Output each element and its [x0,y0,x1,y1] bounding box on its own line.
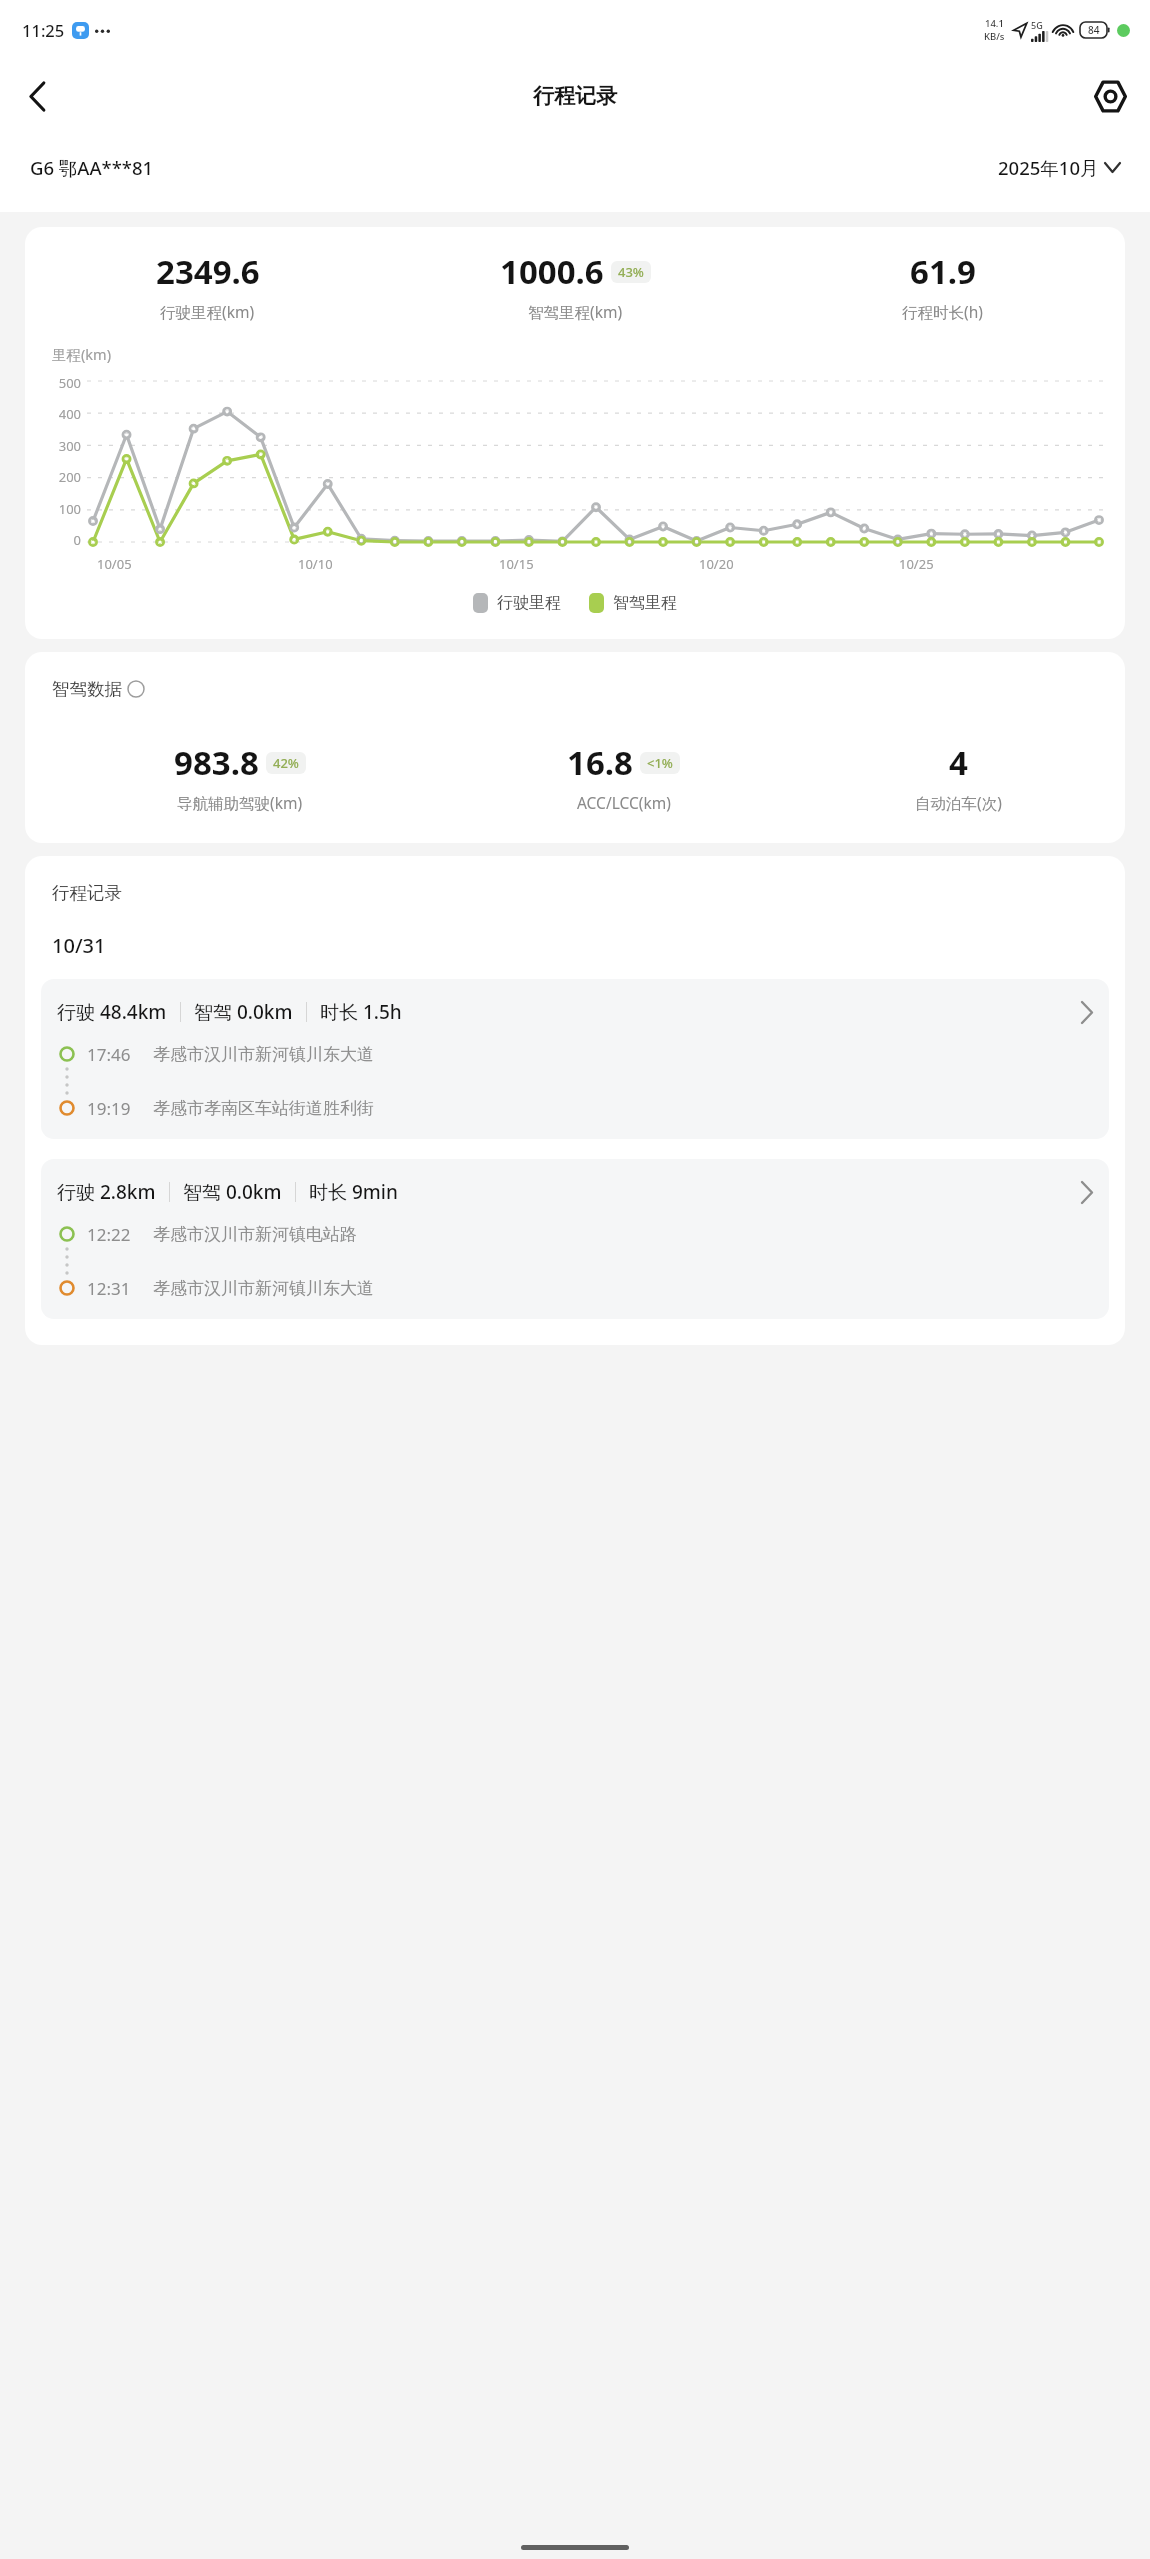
staticText: 200 [58,468,81,486]
staticText: 10/05 [97,555,132,573]
button[interactable]: Back [9,68,65,124]
staticText: KB/s [984,30,1005,43]
staticText: 10/10 [298,555,333,573]
staticText: 智驾里程 [613,593,677,613]
staticText: 12:22 [87,1223,131,1246]
staticText: 500 [58,374,81,392]
staticText: 4 [949,740,968,785]
staticText: 行程记录 [52,882,122,904]
staticText: 孝感市汉川市新河镇川东大道 [153,1044,374,1065]
staticText: 12:31 [87,1277,131,1300]
staticText: 983.8 [174,740,259,785]
button[interactable]: Settings [1082,68,1138,124]
staticText: 84 [1088,23,1100,37]
staticText: 17:46 [87,1043,131,1066]
staticText: 2025年10月 [998,155,1099,180]
staticText: <1% [647,754,673,772]
staticText: ACC/LCC(km) [577,792,671,813]
staticText: 10/31 [52,932,106,959]
staticText: 10/15 [499,555,534,573]
staticText: 100 [58,500,81,518]
other: Open trip [1081,1182,1093,1203]
staticText: 孝感市汉川市新河镇川东大道 [153,1278,374,1299]
staticText: 智驾 0.0km [183,1179,282,1205]
staticText: 里程(km) [52,344,112,364]
staticText: 11:25 [22,19,65,41]
staticText: 行驶 2.8km [57,1179,156,1205]
staticText: 时长 1.5h [320,999,402,1025]
staticText: 5G [1031,19,1043,31]
other: Open trip [1081,1002,1093,1023]
staticText: 行驶 48.4km [57,999,167,1025]
staticText: G6 鄂AA***81 [30,155,154,180]
button[interactable]: 2025年10月 [998,149,1120,186]
staticText: 19:19 [87,1097,131,1120]
staticText: 400 [58,405,81,423]
button[interactable]: 行驶 48.4km [41,979,1109,1139]
staticText: 42% [273,754,299,772]
staticText: 300 [58,437,81,455]
staticText: 行驶里程(km) [160,301,255,322]
staticText: 43% [618,263,644,281]
staticText: 行程记录 [533,83,617,109]
staticText: 10/25 [899,555,934,573]
staticText: 孝感市汉川市新河镇电站路 [153,1224,357,1245]
other: Help [127,680,145,698]
button[interactable]: G6 鄂AA***81 [30,149,154,186]
staticText: 14.1 [985,17,1004,30]
staticText: 2349.6 [156,249,260,294]
button[interactable]: 智驾数据 [52,678,145,700]
staticText: 10/20 [699,555,734,573]
staticText: 自动泊车(次) [915,792,1002,813]
staticText: 导航辅助驾驶(km) [177,792,303,813]
staticText: 孝感市孝南区车站街道胜利街 [153,1098,374,1119]
staticText: 行驶里程 [497,593,561,613]
staticText: 1000.6 [500,249,604,294]
staticText: 时长 9min [309,1179,398,1205]
staticText: 智驾数据 [52,678,122,700]
staticText: 61.9 [910,249,976,294]
staticText: 16.8 [567,740,633,785]
staticText: 0 [73,531,81,549]
staticText: 智驾里程(km) [528,301,623,322]
staticText: 智驾 0.0km [194,999,293,1025]
staticText: 行程时长(h) [902,301,983,322]
button[interactable]: 行驶 2.8km [41,1159,1109,1319]
